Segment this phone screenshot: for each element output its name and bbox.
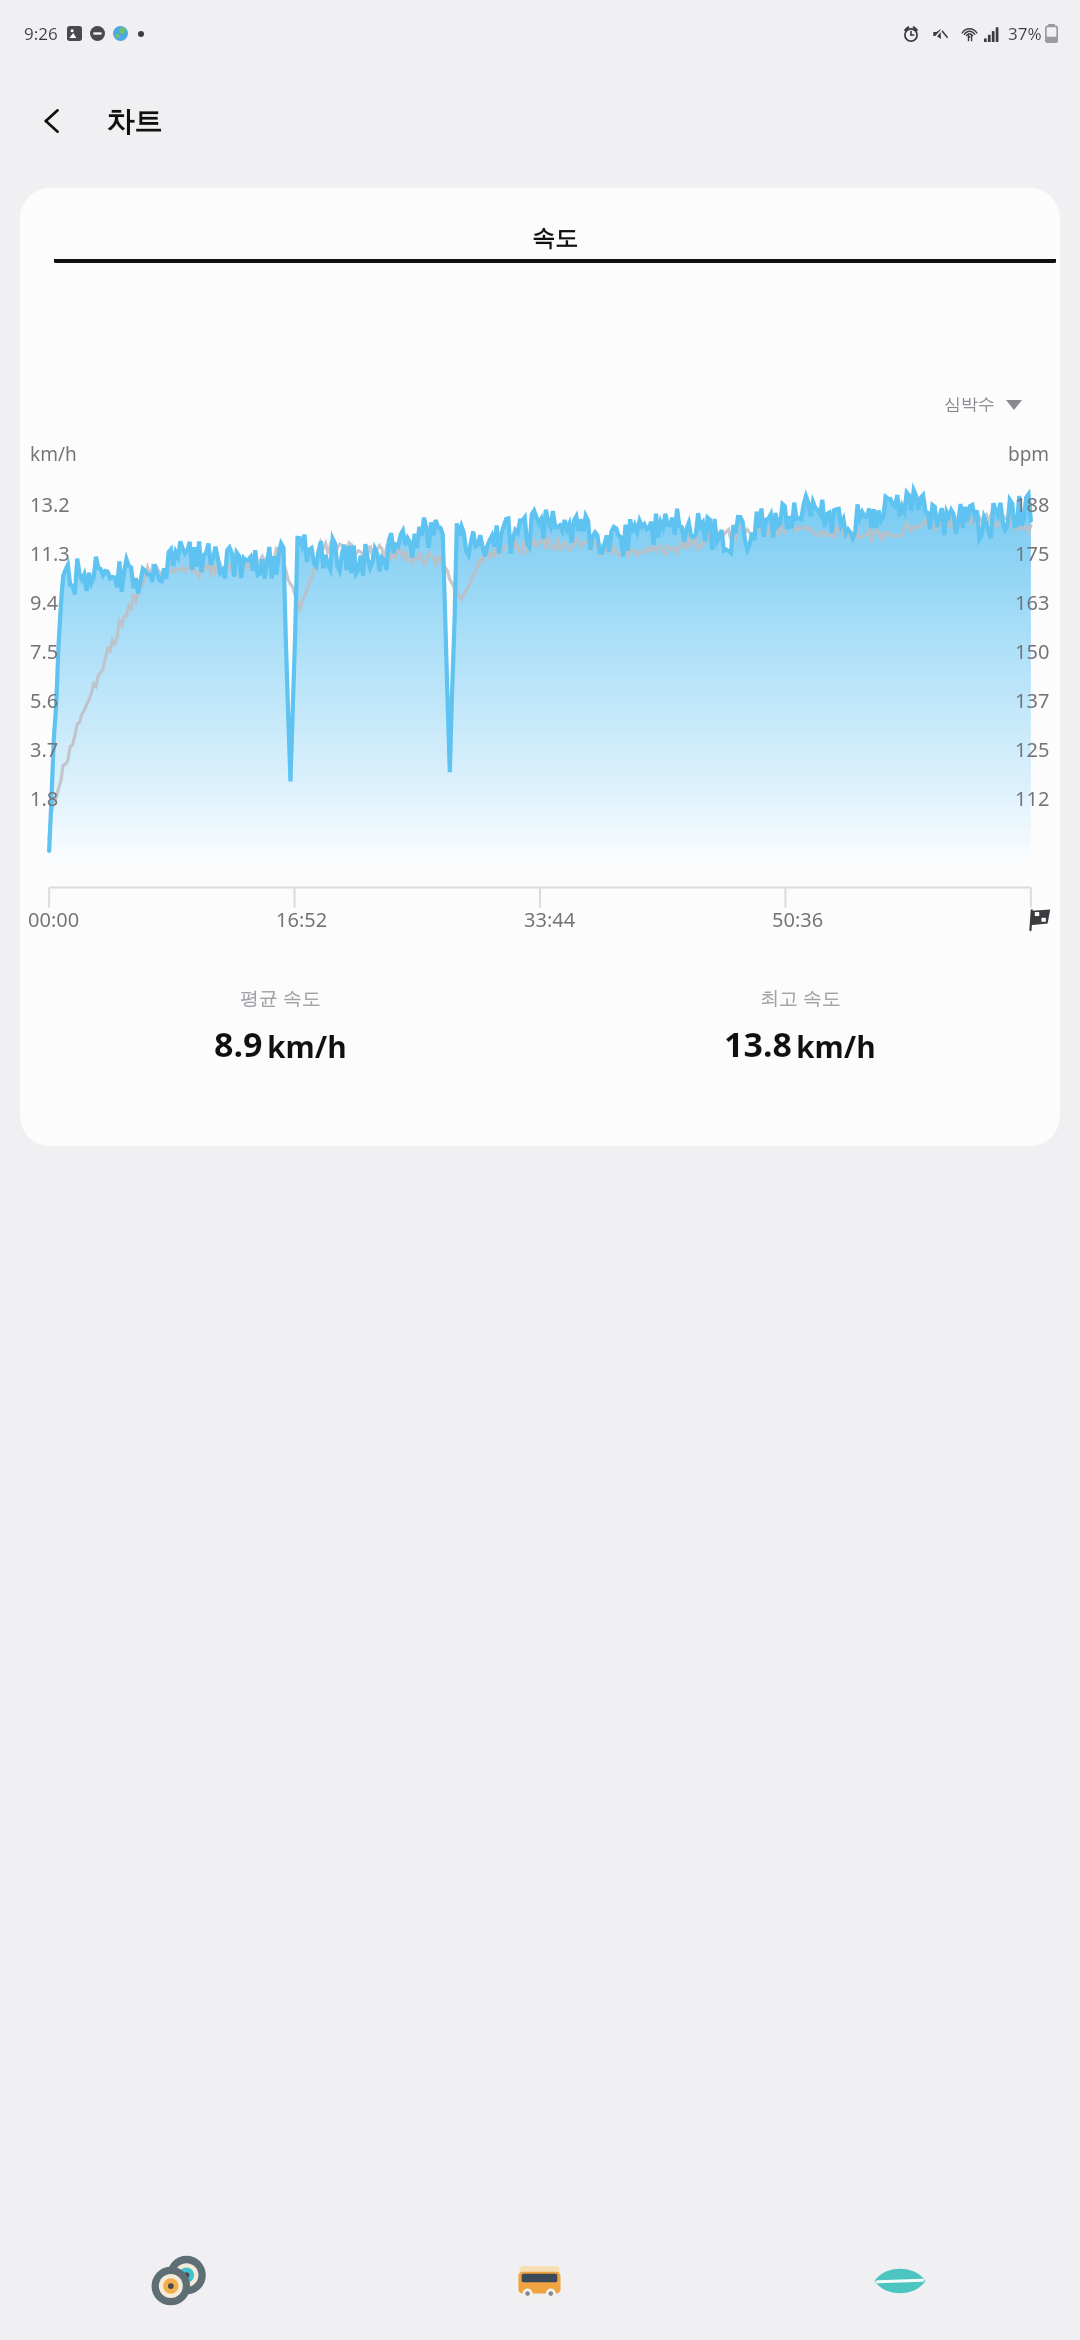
staticText: 137 bbox=[1015, 687, 1050, 714]
staticText: 3.7 bbox=[30, 736, 59, 763]
staticText: 7.5 bbox=[30, 638, 59, 665]
staticText: 속도 bbox=[532, 224, 578, 253]
staticText: 00:00 bbox=[28, 906, 80, 933]
button[interactable]: 최고 속도 bbox=[540, 981, 1060, 1071]
button[interactable]: 심박수 bbox=[938, 390, 1028, 419]
staticText: 175 bbox=[1015, 540, 1050, 567]
staticText: km/h bbox=[267, 1026, 347, 1067]
button[interactable]: 속도 bbox=[50, 224, 1060, 263]
staticText: 16:52 bbox=[276, 906, 328, 933]
staticText: 188 bbox=[1015, 491, 1050, 518]
staticText: 심박수 bbox=[944, 394, 995, 415]
staticText: 차트 bbox=[106, 104, 162, 139]
staticText: 9.4 bbox=[30, 589, 59, 616]
staticText: 5.6 bbox=[30, 687, 59, 714]
staticText: km/h bbox=[30, 441, 77, 467]
staticText: 37% bbox=[1008, 22, 1042, 45]
staticText: 13.2 bbox=[30, 491, 70, 518]
staticText: 13.8 bbox=[724, 1021, 792, 1067]
staticText: 11.3 bbox=[30, 540, 70, 567]
staticText: 163 bbox=[1015, 589, 1050, 616]
staticText: 33:44 bbox=[524, 906, 576, 933]
staticText: km/h bbox=[796, 1026, 876, 1067]
button[interactable]: 평균 속도 bbox=[20, 981, 540, 1071]
button[interactable]: Recents bbox=[0, 2222, 360, 2340]
staticText: 평균 속도 bbox=[240, 985, 321, 1011]
staticText: 150 bbox=[1015, 638, 1050, 665]
staticText: 8.9 bbox=[214, 1021, 263, 1067]
staticText: 최고 속도 bbox=[760, 985, 841, 1011]
button[interactable]: Home bbox=[360, 2222, 720, 2340]
staticText: 112 bbox=[1015, 785, 1050, 812]
staticText: 9:26 bbox=[24, 22, 58, 45]
staticText: bpm bbox=[1008, 441, 1050, 467]
staticText: 50:36 bbox=[772, 906, 824, 933]
button[interactable]: Back bbox=[20, 89, 84, 153]
button[interactable]: Back bbox=[720, 2222, 1080, 2340]
staticText: 1.8 bbox=[30, 785, 59, 812]
staticText: 125 bbox=[1015, 736, 1050, 763]
